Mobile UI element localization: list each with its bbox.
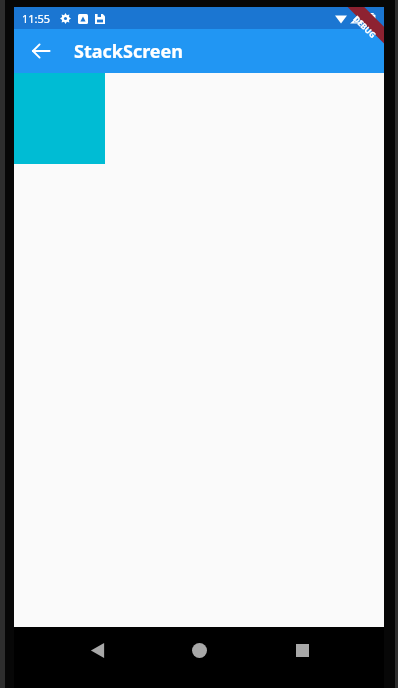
staticText: StackScreen <box>74 39 184 64</box>
button[interactable]: Home <box>179 630 219 670</box>
button[interactable]: Back <box>77 630 117 670</box>
staticText: DEBUG <box>351 13 379 40</box>
button[interactable]: Back <box>26 36 56 66</box>
staticText: 11:55 <box>22 11 51 26</box>
button[interactable]: Recent apps <box>282 630 322 670</box>
